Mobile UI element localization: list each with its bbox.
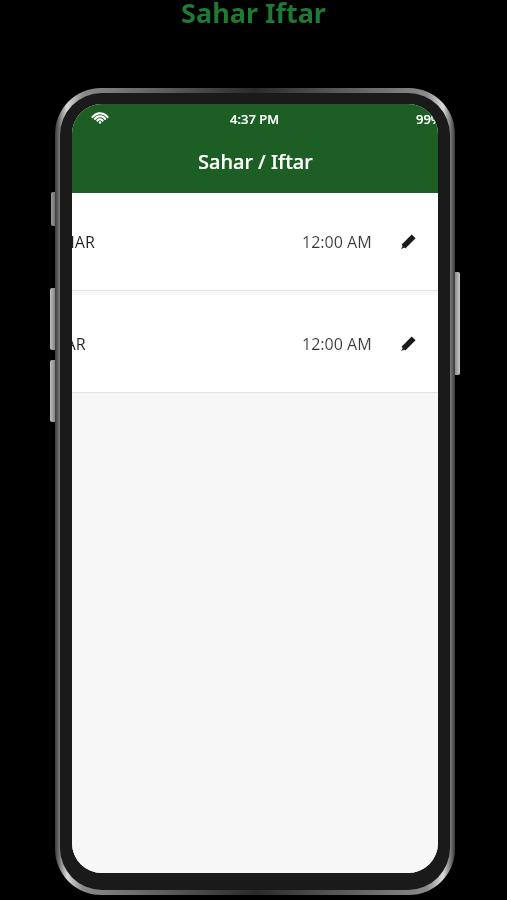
- staticText: SAHAR: [72, 231, 96, 253]
- staticText: Sahar Iftar: [181, 0, 326, 31]
- button[interactable]: IFTAR: [72, 295, 438, 392]
- staticText: 12:00 AM: [302, 231, 372, 253]
- staticText: 4:37 PM: [230, 110, 280, 128]
- staticText: IFTAR: [72, 333, 86, 355]
- staticText: 12:00 AM: [302, 333, 372, 355]
- staticText: 99%: [416, 110, 438, 128]
- button[interactable]: Edit SAHAR time: [394, 229, 420, 255]
- button[interactable]: Edit IFTAR time: [394, 331, 420, 357]
- staticText: Sahar / Iftar: [198, 148, 313, 175]
- button[interactable]: SAHAR: [72, 193, 438, 290]
